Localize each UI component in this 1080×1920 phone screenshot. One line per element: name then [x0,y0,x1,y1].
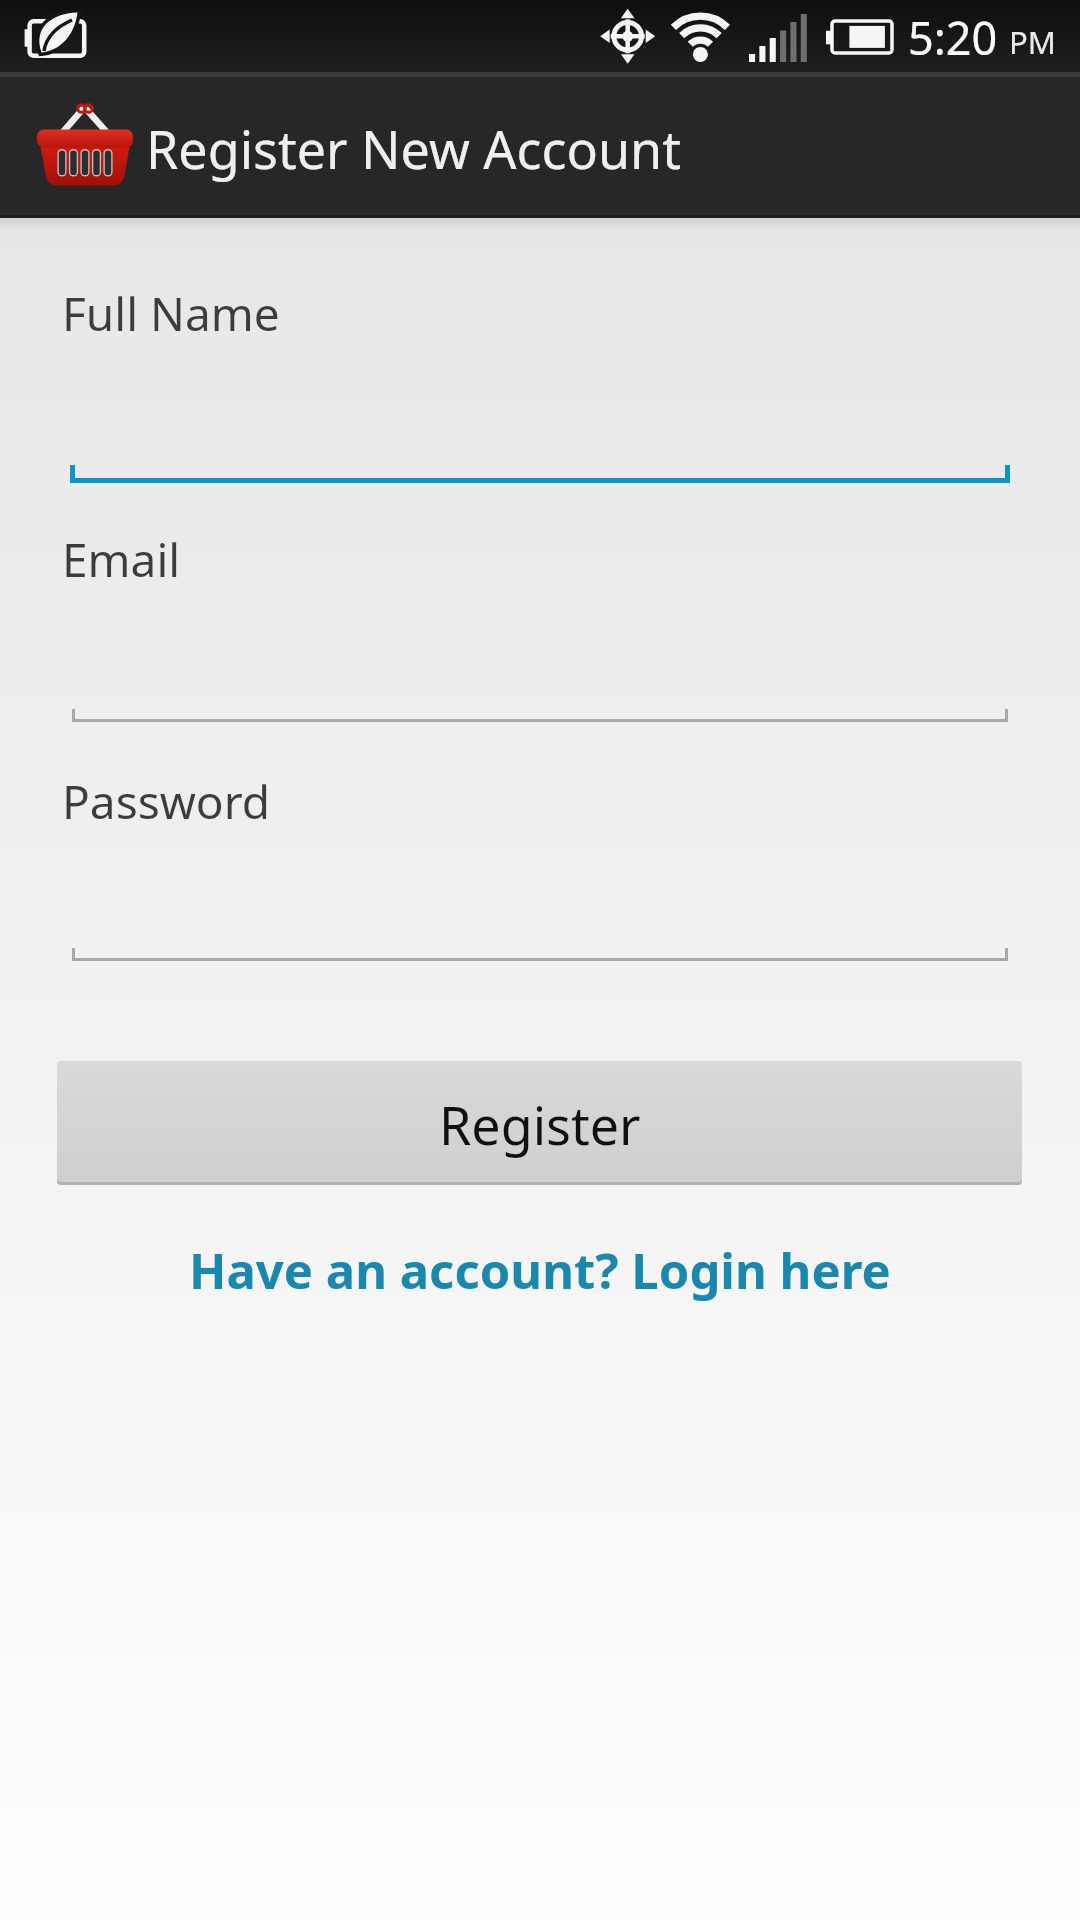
staticText: Password [62,770,271,833]
button[interactable] [60,349,1020,483]
staticText: Register New Account [146,113,681,184]
staticText: PM [1009,21,1056,63]
button[interactable] [60,829,1020,961]
staticText: Have an account? Login here [189,1237,891,1304]
staticText: Full Name [62,282,280,345]
staticText: 5:20 [908,7,998,68]
staticText: Register [439,1089,641,1160]
button[interactable]: Have an account? Login here [189,1237,891,1304]
staticText: Email [62,528,181,591]
button[interactable] [60,590,1020,722]
button[interactable]: Register [57,1061,1022,1182]
